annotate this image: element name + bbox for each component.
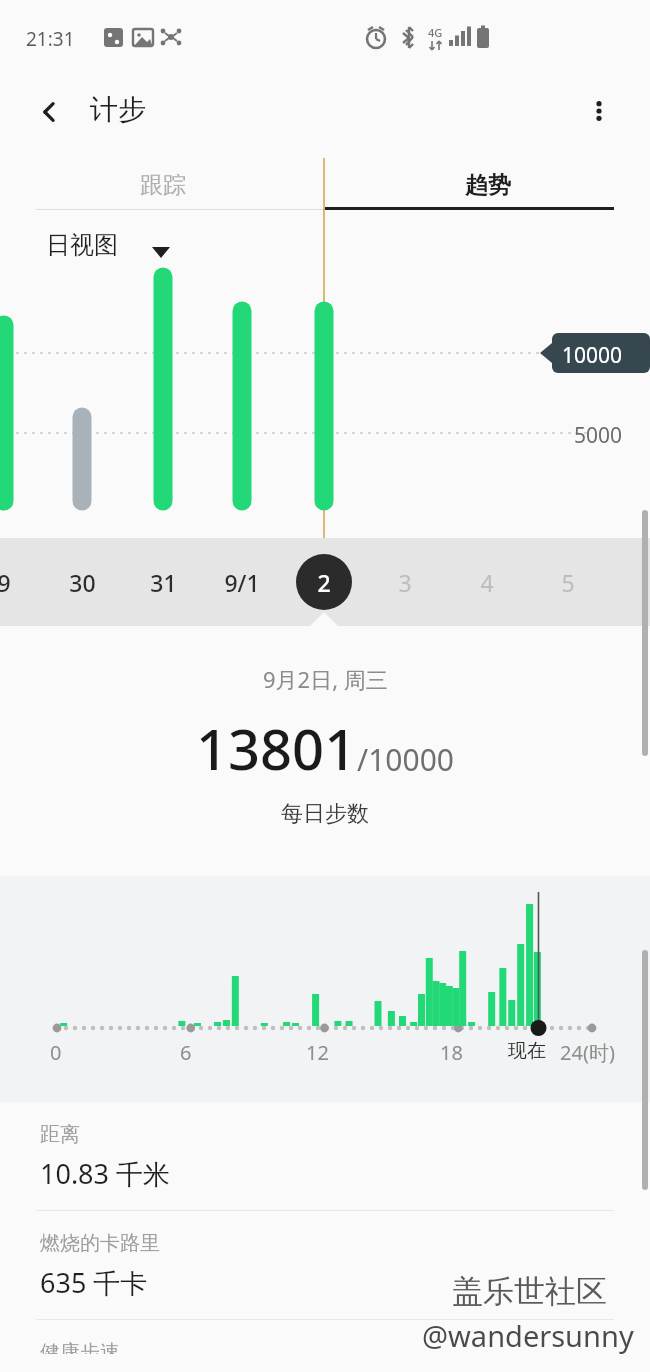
staticText: 4G	[428, 25, 443, 40]
button[interactable]: 9/1	[208, 548, 276, 616]
staticText: 距离	[40, 1122, 80, 1147]
button[interactable]: More options	[570, 82, 628, 140]
staticText: 5	[561, 567, 575, 598]
button[interactable]: 9	[0, 548, 38, 616]
button[interactable]: 30	[48, 548, 116, 616]
button[interactable]: 31	[129, 548, 197, 616]
staticText: @wandersunny	[422, 1316, 634, 1355]
staticText: 健康步速	[40, 1340, 120, 1354]
staticText: /10000	[357, 739, 454, 780]
button[interactable]: 5	[534, 548, 602, 616]
staticText: 日视图	[46, 230, 118, 260]
button[interactable]: Back	[22, 84, 78, 140]
staticText: 计步	[90, 92, 146, 127]
staticText: 13801	[196, 710, 357, 786]
staticText: 18	[440, 1039, 463, 1066]
staticText: 24(时)	[560, 1039, 615, 1066]
staticText: 2	[317, 567, 331, 598]
staticText: 4	[480, 567, 494, 598]
staticText: 9月2日, 周三	[263, 664, 388, 694]
staticText: 5000	[574, 421, 623, 450]
staticText: 趋势	[465, 171, 511, 200]
button[interactable]: 3	[371, 548, 439, 616]
staticText: 0	[50, 1039, 62, 1066]
staticText: 燃烧的卡路里	[40, 1231, 160, 1256]
staticText: 现在	[508, 1039, 546, 1063]
button[interactable]: 4	[453, 548, 521, 616]
staticText: 9/1	[224, 567, 260, 598]
button[interactable]: 健康步速	[0, 1320, 650, 1372]
button[interactable]: 距离	[0, 1102, 650, 1210]
button[interactable]: 跟踪	[0, 152, 325, 218]
staticText: 盖乐世社区	[452, 1272, 607, 1311]
staticText: 635 千卡	[40, 1264, 148, 1301]
staticText: 跟踪	[140, 171, 186, 200]
staticText: 3	[398, 567, 412, 598]
button[interactable]: 2	[290, 548, 358, 616]
staticText: 每日步数	[281, 800, 369, 828]
staticText: 30	[69, 567, 96, 598]
staticText: 31	[150, 567, 177, 598]
staticText: 10.83 千米	[40, 1155, 171, 1192]
staticText: 12	[306, 1039, 329, 1066]
staticText: 21:31	[26, 26, 75, 52]
staticText: 9	[0, 567, 11, 598]
button[interactable]	[40, 224, 170, 268]
staticText: 6	[180, 1039, 192, 1066]
button[interactable]: 燃烧的卡路里	[0, 1211, 650, 1319]
staticText: 10000	[562, 341, 623, 370]
button[interactable]: 趋势	[325, 152, 650, 218]
